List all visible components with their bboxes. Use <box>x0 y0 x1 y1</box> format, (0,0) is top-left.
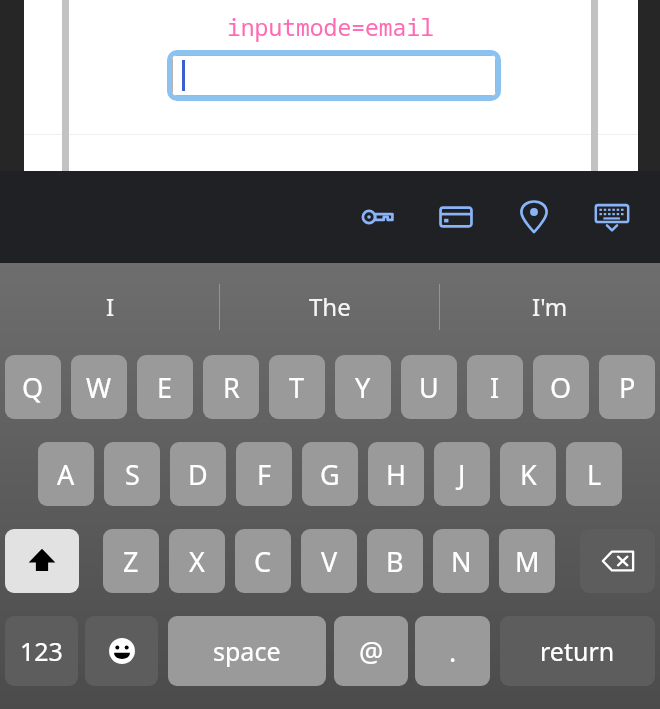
button[interactable]: T <box>269 355 325 419</box>
button[interactable]: H <box>368 442 424 506</box>
button[interactable]: space <box>168 616 326 686</box>
staticText: return <box>540 634 615 668</box>
button[interactable]: The <box>220 263 440 350</box>
staticText: P <box>619 369 636 406</box>
button[interactable]: M <box>499 529 555 593</box>
button[interactable]: Payment methods <box>417 171 495 263</box>
button[interactable]: L <box>566 442 622 506</box>
staticText: space <box>213 634 281 668</box>
staticText: G <box>320 456 340 493</box>
staticText: I <box>490 369 500 406</box>
button[interactable]: V <box>301 529 357 593</box>
button[interactable]: X <box>169 529 225 593</box>
staticText: . <box>449 633 457 670</box>
button[interactable]: I <box>467 355 523 419</box>
button[interactable]: Shift <box>5 529 79 593</box>
button[interactable]: return <box>500 616 655 686</box>
button[interactable]: Backspace <box>580 529 655 593</box>
staticText: D <box>188 456 208 493</box>
button[interactable]: I'm <box>440 263 660 350</box>
staticText: inputmode=email <box>227 11 435 42</box>
staticText: F <box>257 456 272 493</box>
button[interactable]: Emoji <box>85 616 158 686</box>
button[interactable]: R <box>203 355 259 419</box>
staticText: J <box>458 456 466 493</box>
staticText: B <box>386 543 404 580</box>
button[interactable] <box>172 55 496 96</box>
button[interactable]: I <box>0 263 220 350</box>
staticText: H <box>386 456 407 493</box>
staticText: K <box>520 456 537 493</box>
button[interactable]: N <box>433 529 489 593</box>
button[interactable]: K <box>500 442 556 506</box>
staticText: M <box>515 543 540 580</box>
staticText: I'm <box>532 290 568 323</box>
staticText: @ <box>359 633 384 670</box>
button[interactable]: J <box>434 442 490 506</box>
staticText: The <box>309 290 351 323</box>
staticText: C <box>254 543 272 580</box>
button[interactable]: O <box>533 355 589 419</box>
button[interactable]: Y <box>335 355 391 419</box>
button[interactable]: Passwords <box>339 171 417 263</box>
button[interactable]: S <box>104 442 160 506</box>
staticText: 123 <box>20 634 63 668</box>
button[interactable]: 123 <box>5 616 78 686</box>
button[interactable]: D <box>170 442 226 506</box>
button[interactable]: Addresses <box>495 171 573 263</box>
button[interactable]: W <box>71 355 127 419</box>
staticText: Y <box>355 369 371 406</box>
staticText: A <box>57 456 75 493</box>
staticText: N <box>451 543 472 580</box>
button[interactable]: . <box>415 616 490 686</box>
button[interactable]: A <box>38 442 94 506</box>
button[interactable]: B <box>367 529 423 593</box>
button[interactable]: U <box>401 355 457 419</box>
staticText: I <box>106 290 115 323</box>
button[interactable]: E <box>137 355 193 419</box>
button[interactable]: Q <box>5 355 61 419</box>
staticText: X <box>189 543 205 580</box>
button[interactable]: Keyboard <box>573 171 651 263</box>
button[interactable]: P <box>599 355 655 419</box>
button[interactable]: Z <box>103 529 159 593</box>
staticText: V <box>321 543 338 580</box>
staticText: Z <box>123 543 139 580</box>
staticText: R <box>223 369 240 406</box>
staticText: O <box>550 369 572 406</box>
staticText: L <box>587 456 602 493</box>
staticText: E <box>157 369 173 406</box>
staticText: W <box>86 369 112 406</box>
button[interactable]: C <box>235 529 291 593</box>
staticText: S <box>125 456 140 493</box>
staticText: U <box>419 369 439 406</box>
button[interactable]: @ <box>334 616 408 686</box>
button[interactable]: F <box>236 442 292 506</box>
staticText: Q <box>22 369 44 406</box>
button[interactable]: G <box>302 442 358 506</box>
staticText: T <box>289 369 305 406</box>
